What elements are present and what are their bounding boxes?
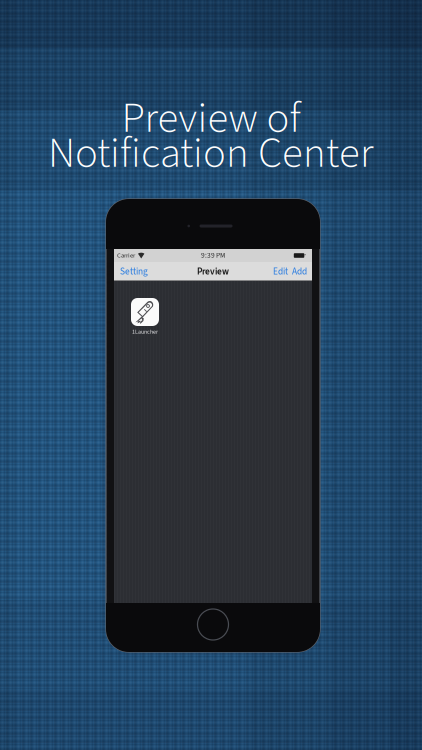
staticText: Carrier — [117, 251, 135, 260]
button[interactable]: Add — [290, 262, 312, 281]
button[interactable]: Setting — [114, 262, 156, 281]
button[interactable]: 1Launcher — [125, 298, 165, 336]
staticText: Edit — [273, 265, 288, 278]
staticText: 1Launcher — [132, 327, 158, 336]
staticText: Preview — [197, 265, 229, 278]
staticText: Add — [292, 265, 307, 278]
staticText: Notification Center — [48, 123, 374, 184]
staticText: Setting — [120, 265, 148, 278]
button[interactable]: Edit — [265, 262, 290, 281]
staticText: Preview of — [121, 88, 300, 149]
staticText: 9:39 PM — [201, 250, 225, 261]
